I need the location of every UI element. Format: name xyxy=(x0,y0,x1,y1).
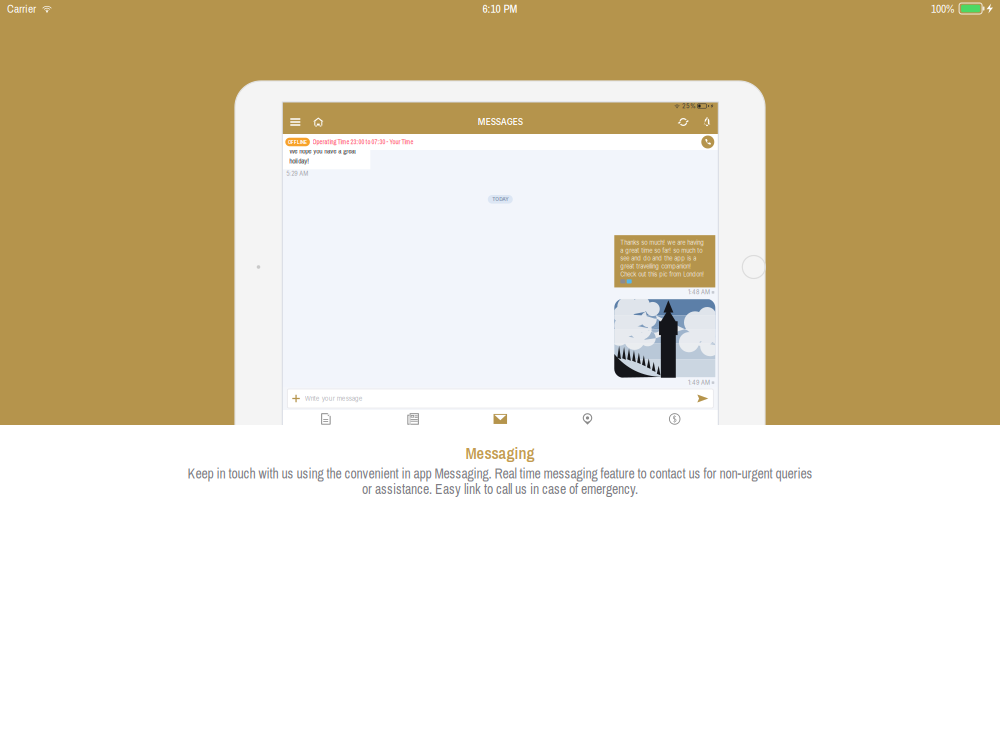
staticText: Keep in touch with us using the convenie… xyxy=(187,464,812,483)
staticText: a great time so far! so much to xyxy=(620,247,702,254)
button[interactable]: Send xyxy=(697,394,708,402)
staticText: holiday! xyxy=(289,156,309,166)
staticText: Write your message xyxy=(305,395,363,402)
button[interactable]: Menu xyxy=(282,112,308,132)
staticText: Thanks so much! we are having xyxy=(620,239,704,246)
staticText: see and do and the app is a xyxy=(620,255,696,262)
staticText: Carrier xyxy=(7,1,36,16)
button[interactable]: Attach xyxy=(292,395,300,402)
staticText: 100% xyxy=(931,1,954,16)
button[interactable]: Notifications xyxy=(696,113,718,131)
button[interactable]: Guide xyxy=(369,409,457,434)
staticText: great travelling companion! xyxy=(620,263,691,270)
staticText: TODAY xyxy=(492,196,508,202)
staticText: 6:10 PM xyxy=(482,1,517,16)
staticText: We hope you have a great xyxy=(289,146,356,156)
button[interactable]: Message xyxy=(457,409,544,434)
staticText: 1:49 AM xyxy=(688,379,710,386)
button[interactable]: Refresh xyxy=(671,112,696,131)
staticText: MESSAGES xyxy=(478,117,523,127)
staticText: 5:29 AM xyxy=(286,170,308,177)
staticText: 1:48 AM xyxy=(688,289,710,296)
button[interactable]: Home xyxy=(308,112,328,131)
button[interactable]: Currency xyxy=(631,409,718,434)
button[interactable]: Call xyxy=(701,135,714,148)
button[interactable]: Docs xyxy=(282,409,369,434)
button[interactable]: Maps xyxy=(544,409,631,434)
staticText: Operating Time 23:00 to 07:30 - Your Tim… xyxy=(312,138,413,146)
staticText: OFFLINE xyxy=(288,138,307,146)
staticText: Check out this pic from London! xyxy=(620,271,704,278)
staticText: Messaging xyxy=(465,442,534,464)
staticText: or assistance. Easy link to call us in c… xyxy=(362,480,638,498)
staticText: 25% xyxy=(682,102,696,110)
